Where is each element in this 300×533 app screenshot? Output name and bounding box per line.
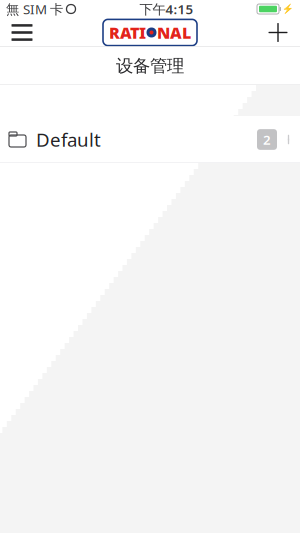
staticText: 無 SIM 卡 xyxy=(6,0,63,18)
button[interactable]: Menu xyxy=(0,18,44,47)
staticText: 设备管理 xyxy=(116,55,184,77)
staticText: Default xyxy=(36,127,101,152)
button[interactable]: Default xyxy=(0,116,300,163)
staticText: 2 xyxy=(263,131,271,148)
staticText: NAL xyxy=(157,22,191,43)
button[interactable]: Add xyxy=(256,18,300,47)
staticText: ⚡ xyxy=(282,4,294,14)
staticText: 下午4:15 xyxy=(139,0,193,18)
staticText: RATI xyxy=(109,22,146,43)
